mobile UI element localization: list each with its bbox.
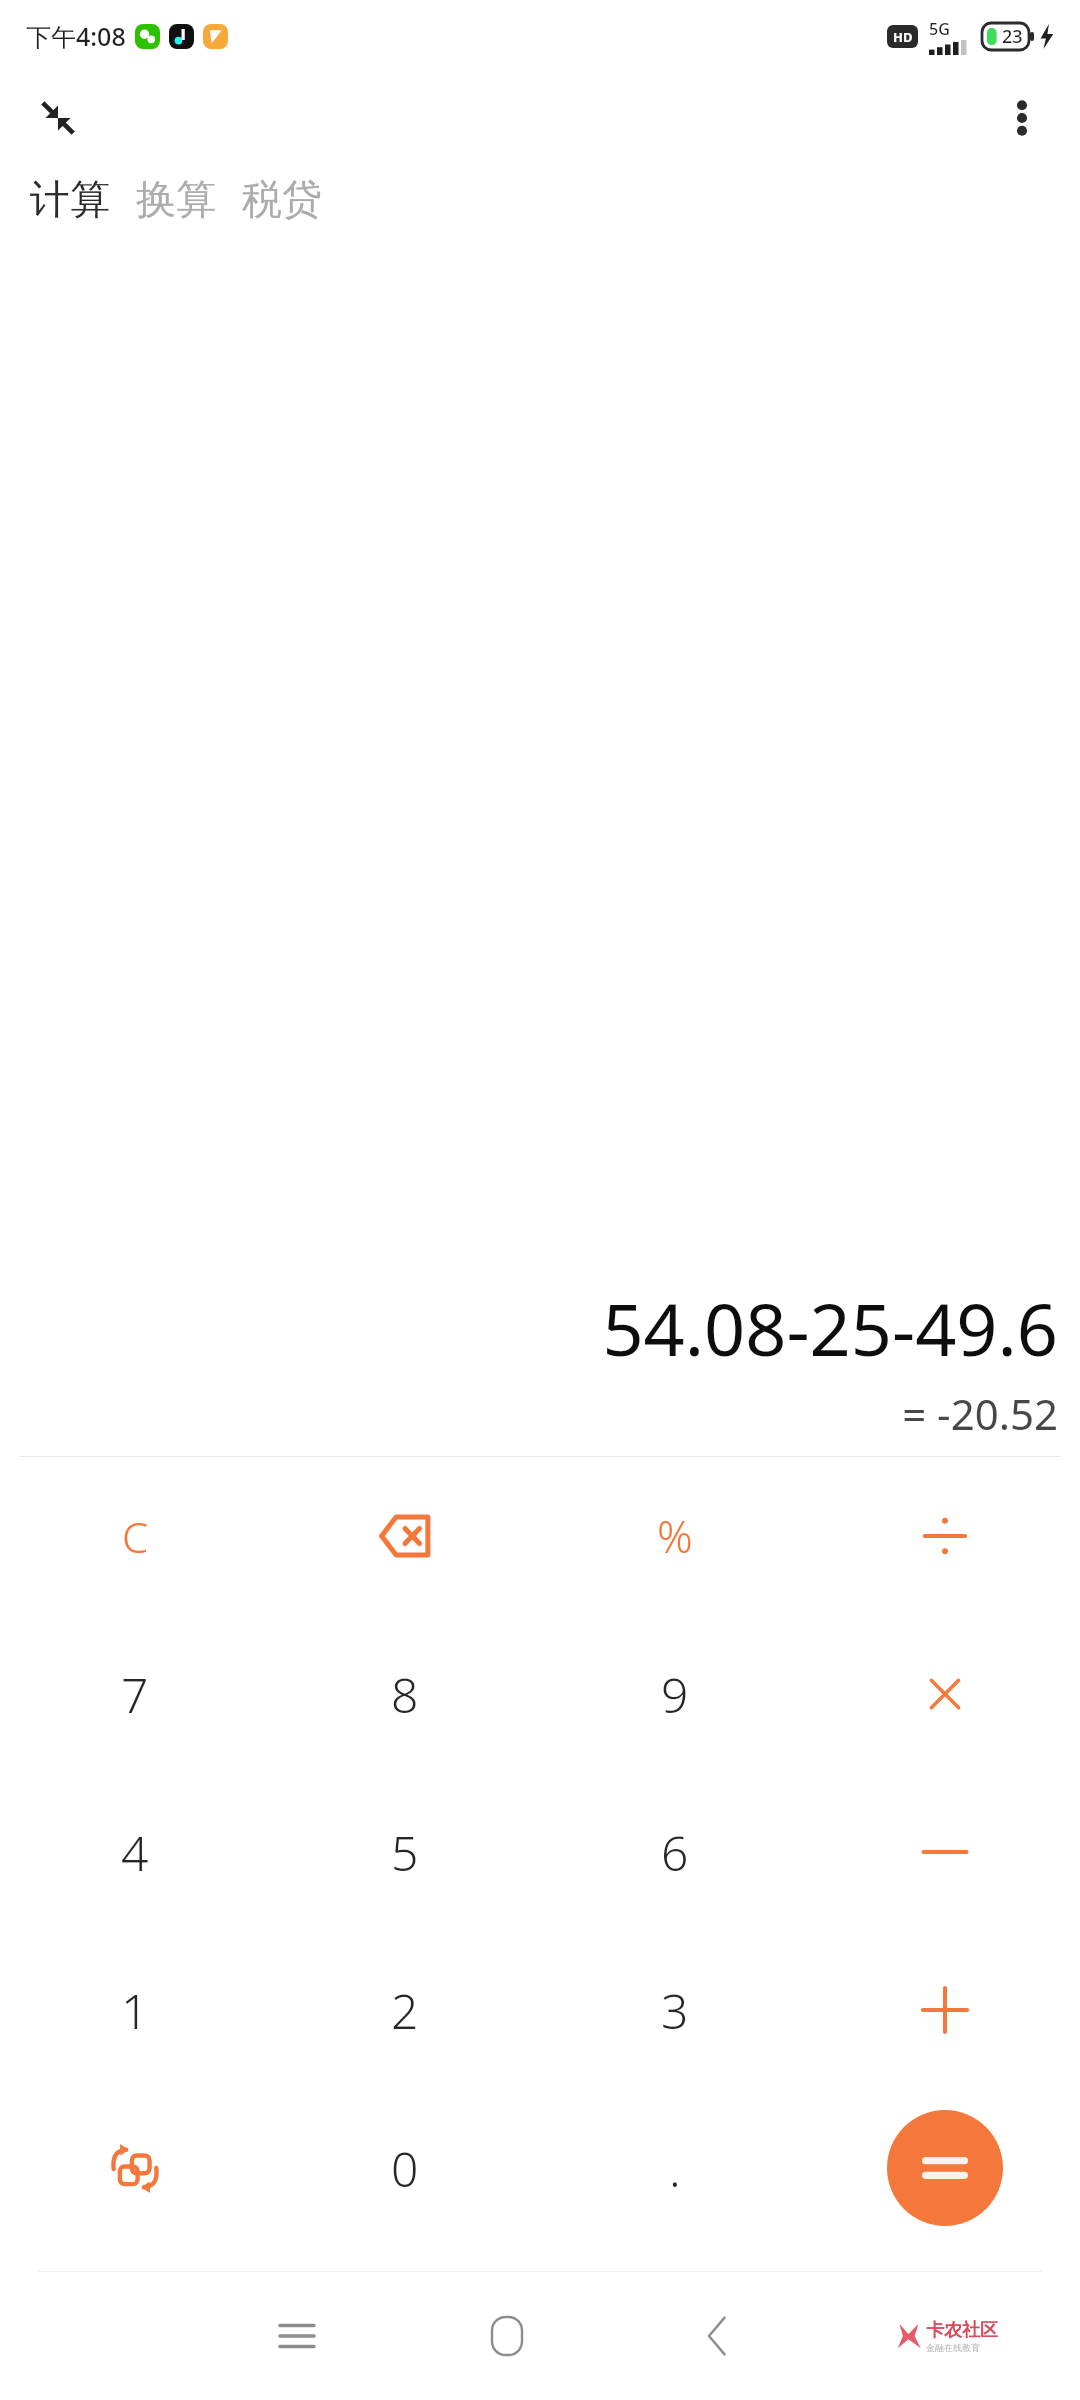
staticText: 0 bbox=[391, 2136, 419, 2201]
button[interactable]: Equals bbox=[887, 2110, 1003, 2226]
staticText: . bbox=[669, 2136, 681, 2201]
staticText: 9 bbox=[661, 1662, 689, 1727]
button[interactable]: More options bbox=[990, 86, 1054, 150]
button[interactable]: Minus bbox=[885, 1792, 1005, 1912]
staticText: 换算 bbox=[136, 174, 216, 224]
button[interactable]: C bbox=[75, 1476, 195, 1596]
staticText: = -20.52 bbox=[902, 1385, 1058, 1442]
button[interactable]: 0 bbox=[345, 2108, 465, 2228]
staticText: 税贷 bbox=[242, 174, 322, 224]
staticText: 4 bbox=[121, 1820, 149, 1885]
button[interactable]: Home bbox=[402, 2272, 612, 2400]
button[interactable]: % bbox=[615, 1476, 735, 1596]
button[interactable]: 5 bbox=[345, 1792, 465, 1912]
staticText: 1 bbox=[121, 1978, 149, 2043]
staticText: C bbox=[122, 1508, 149, 1565]
button[interactable]: 3 bbox=[615, 1950, 735, 2070]
staticText: % bbox=[657, 1506, 693, 1566]
button[interactable]: Recent apps bbox=[192, 2272, 402, 2400]
button[interactable]: 7 bbox=[75, 1634, 195, 1754]
button[interactable]: Back bbox=[612, 2272, 822, 2400]
button[interactable]: 换算 bbox=[130, 168, 222, 230]
staticText: 卡农社区 bbox=[926, 2319, 998, 2342]
staticText: 6 bbox=[661, 1820, 689, 1885]
staticText: 7 bbox=[121, 1662, 149, 1727]
staticText: 计算 bbox=[30, 174, 110, 224]
button[interactable]: Backspace bbox=[345, 1476, 465, 1596]
staticText: 3 bbox=[661, 1978, 689, 2043]
staticText: 金融在线教育 bbox=[926, 2342, 980, 2353]
button[interactable]: 计算 bbox=[24, 168, 116, 230]
button[interactable]: 8 bbox=[345, 1634, 465, 1754]
staticText: 54.08-25-49.6 bbox=[602, 1279, 1058, 1377]
button[interactable]: 9 bbox=[615, 1634, 735, 1754]
button[interactable]: Collapse window bbox=[26, 86, 90, 150]
button[interactable]: Unit conversion bbox=[75, 2108, 195, 2228]
staticText: 8 bbox=[391, 1662, 419, 1727]
button[interactable]: Multiply bbox=[885, 1634, 1005, 1754]
staticText: 5G bbox=[929, 18, 950, 40]
staticText: 下午4:08 bbox=[26, 19, 126, 53]
button[interactable]: . bbox=[615, 2108, 735, 2228]
button[interactable]: 税贷 bbox=[236, 168, 328, 230]
button[interactable]: 1 bbox=[75, 1950, 195, 2070]
staticText: 2 bbox=[391, 1978, 419, 2043]
button[interactable]: 4 bbox=[75, 1792, 195, 1912]
button[interactable]: Plus bbox=[885, 1950, 1005, 2070]
staticText: 23 bbox=[1002, 24, 1023, 49]
button[interactable]: 6 bbox=[615, 1792, 735, 1912]
staticText: HD bbox=[893, 28, 913, 46]
staticText: 5 bbox=[391, 1820, 419, 1885]
button[interactable]: 2 bbox=[345, 1950, 465, 2070]
button[interactable]: Divide bbox=[885, 1476, 1005, 1596]
